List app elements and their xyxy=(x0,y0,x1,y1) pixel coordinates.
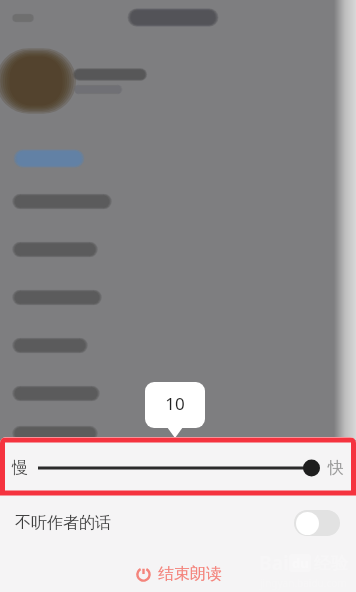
staticText: 慢 xyxy=(12,458,28,478)
staticText: 10 xyxy=(165,392,185,415)
button[interactable]: 结束朗读 xyxy=(125,562,232,586)
staticText: 结束朗读 xyxy=(158,564,222,584)
staticText: 不听作者的话 xyxy=(15,513,111,533)
button[interactable]: 慢 xyxy=(12,437,344,498)
button[interactable]: Ignore author pauses toggle xyxy=(294,510,340,536)
staticText: 快 xyxy=(328,458,344,478)
button[interactable]: Speed slider xyxy=(38,456,320,480)
button[interactable]: 不听作者的话 xyxy=(15,498,340,548)
